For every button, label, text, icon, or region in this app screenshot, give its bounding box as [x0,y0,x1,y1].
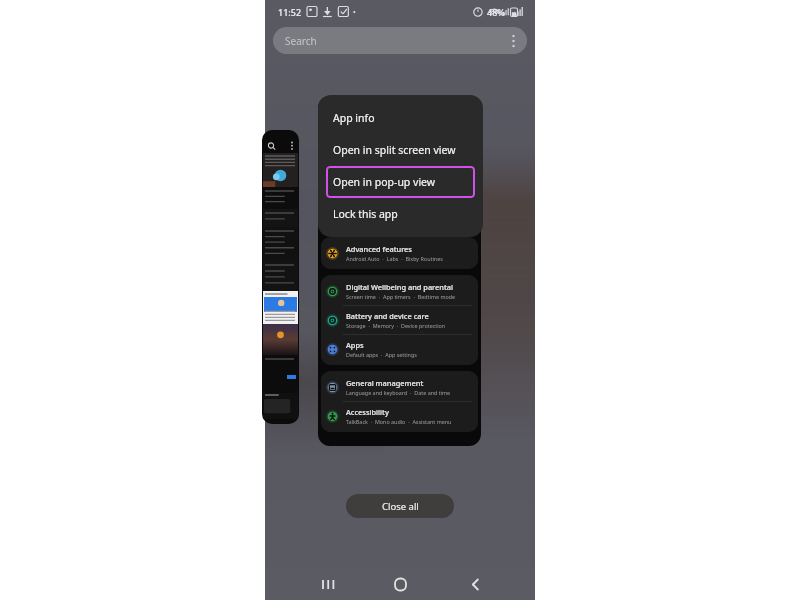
button[interactable]: App info [326,102,475,134]
staticText: Close all [382,500,419,513]
staticText: Lock this app [333,207,398,221]
staticText: 11:52 [278,6,302,18]
staticText: Battery and device care [346,311,429,321]
button[interactable]: Close all [346,494,454,518]
button[interactable]: Open in split screen view [326,134,475,166]
staticText: Accessibility [346,407,389,417]
staticText: Open in split screen view [333,143,456,157]
staticText: TalkBack · Mono audio · Assistant menu [346,418,452,425]
button[interactable]: Battery and device care [321,306,478,334]
staticText: Language and keyboard · Date and time [346,389,451,396]
staticText: Storage · Memory · Device protection [346,322,446,329]
staticText: Search [285,34,317,48]
button[interactable]: Advanced features [318,96,481,446]
button[interactable]: Digital Wellbeing and parental controls [321,277,478,305]
button[interactable] [262,130,299,424]
button[interactable]: Accessibility [321,402,478,430]
staticText: App info [333,111,375,125]
staticText: Open in pop-up view [333,175,436,189]
staticText: General management [346,378,424,388]
button[interactable]: Home [382,572,418,596]
button[interactable]: Back [457,572,493,596]
staticText: Screen time · App timers · Bedtime mode [346,293,456,300]
button[interactable]: Recents [309,572,345,596]
button[interactable]: Search [273,27,527,54]
button[interactable]: Open in pop-up view [326,166,475,198]
staticText: Android Auto · Labs · Bixby Routines [346,255,443,262]
staticText: Default apps · App settings [346,351,417,358]
button[interactable]: Apps [321,335,478,363]
staticText: Apps [346,340,364,350]
staticText: 48% [487,6,505,18]
button[interactable]: General management [321,373,478,401]
staticText: Digital Wellbeing and parental controls [346,282,472,292]
button[interactable]: Advanced features [321,239,478,267]
staticText: Advanced features [346,244,412,254]
button[interactable]: Lock this app [326,198,475,230]
